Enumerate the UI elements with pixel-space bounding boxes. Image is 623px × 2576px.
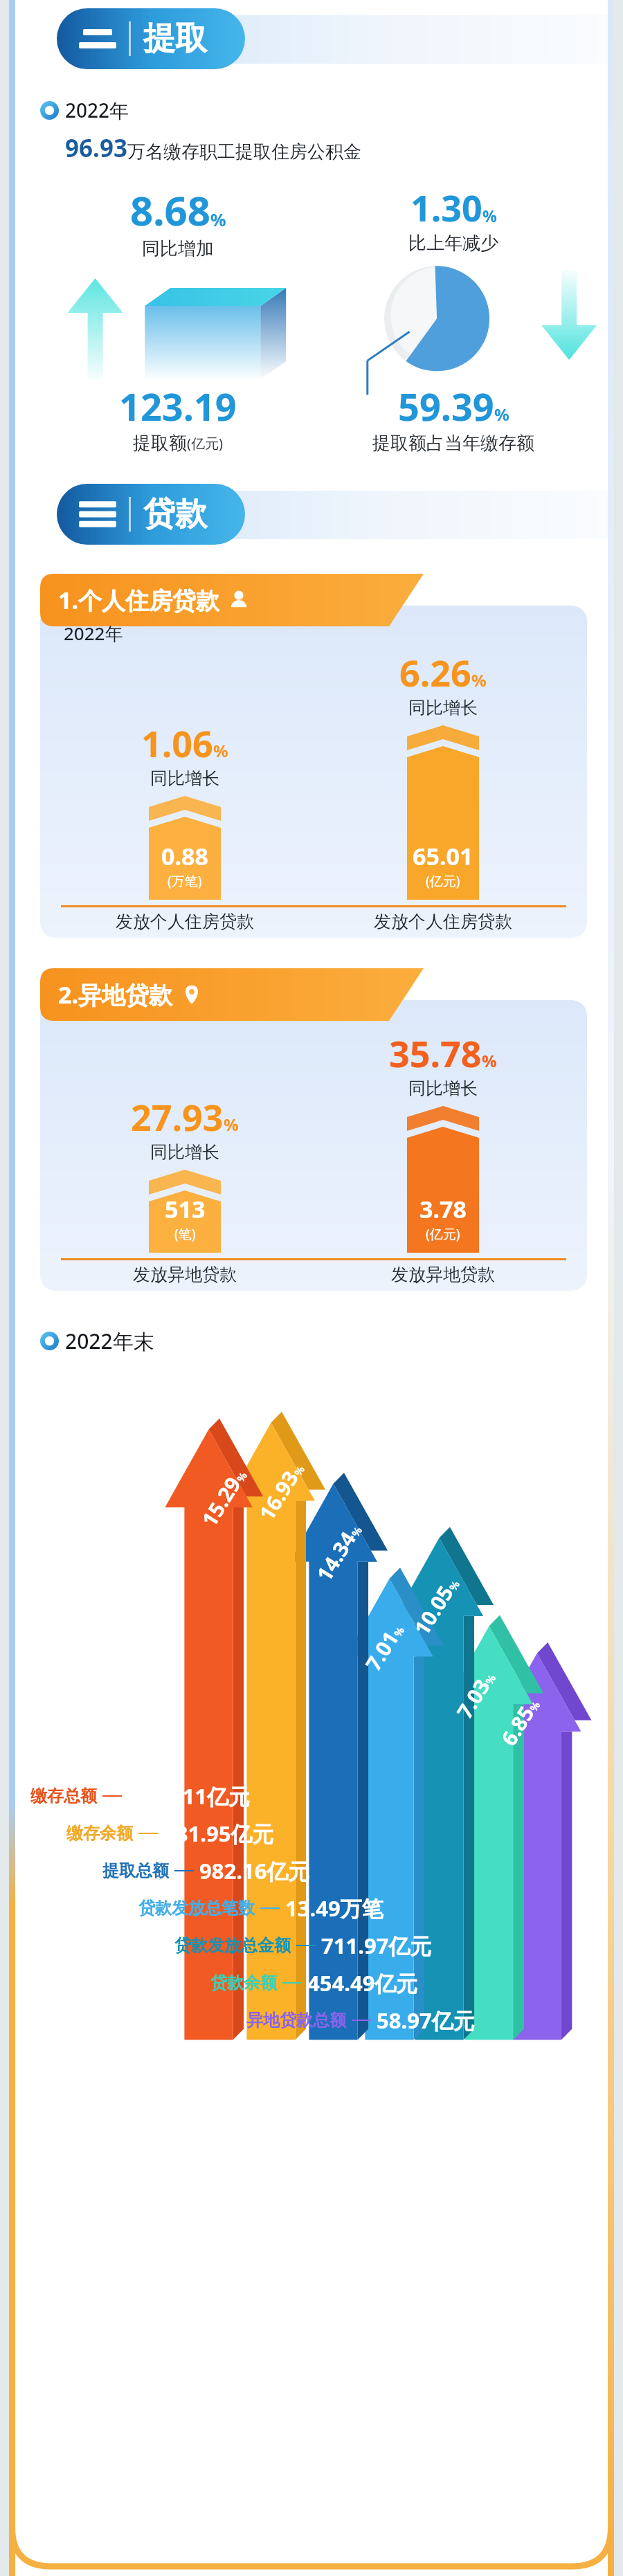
staticText: 6.85 (494, 1701, 540, 1751)
staticText: 58.97亿元 (377, 2006, 475, 2035)
staticText: % (391, 1624, 407, 1639)
staticText: % (494, 403, 509, 426)
other: Person (228, 590, 249, 610)
staticText: 16.93 (252, 1465, 305, 1526)
staticText: 13.49万笔 (285, 1894, 383, 1923)
staticText: 发放个人住房贷款 (374, 911, 512, 932)
staticText: % (348, 1524, 365, 1539)
staticText: 缴存余额 (66, 1823, 133, 1844)
staticText: 8.68 (130, 183, 210, 237)
staticText: % (210, 208, 226, 231)
staticText: 15.29 (195, 1471, 247, 1532)
staticText: 513 (165, 1193, 206, 1225)
staticText: (笔) (174, 1225, 196, 1243)
staticText: (亿元) (426, 1225, 460, 1243)
staticText: % (233, 1469, 250, 1485)
staticText: 1.30 (410, 183, 482, 232)
staticText: % (482, 1049, 497, 1072)
button[interactable]: 2.异地贷款 (40, 968, 587, 1302)
staticText: 异地贷款总额 (246, 2010, 346, 2031)
staticText: 711.97亿元 (321, 1931, 432, 1960)
staticText: (亿元) (187, 434, 223, 453)
staticText: 65.01 (413, 840, 473, 872)
staticText: 454.49亿元 (307, 1968, 418, 1997)
staticText: 59.39 (398, 381, 494, 432)
staticText: 贷款 (143, 494, 207, 534)
staticText: 10.05 (407, 1580, 460, 1641)
staticText: 提取额 (133, 432, 187, 455)
staticText: % (482, 1672, 499, 1687)
staticText: % (291, 1463, 308, 1478)
staticText: 提取 (143, 19, 207, 59)
staticText: 同比增加 (142, 237, 214, 260)
staticText: % (471, 669, 487, 691)
staticText: 2.异地贷款 (58, 979, 173, 1010)
button[interactable]: 1.个人住房贷款 (40, 574, 587, 949)
staticText: 581.95亿元 (163, 1819, 274, 1848)
staticText: 发放个人住房贷款 (116, 911, 254, 932)
staticText: 1564.11亿元 (127, 1781, 251, 1811)
staticText: % (213, 739, 228, 762)
staticText: 982.16亿元 (199, 1856, 310, 1885)
staticText: % (526, 1699, 543, 1714)
staticText: 3.78 (419, 1193, 467, 1225)
staticText: 96.93 (65, 131, 127, 165)
staticText: 2022年末 (65, 1327, 154, 1355)
staticText: 6.26 (399, 648, 471, 697)
staticText: 贷款发放总笔数 (138, 1898, 255, 1919)
staticText: 提取总额 (102, 1860, 169, 1881)
staticText: (万笔) (168, 872, 202, 890)
staticText: 123.19 (119, 381, 237, 432)
staticText: 同比增长 (150, 768, 219, 789)
staticText: 发放异地贷款 (133, 1264, 237, 1285)
staticText: 27.93 (131, 1092, 224, 1141)
staticText: 1.个人住房贷款 (58, 584, 220, 616)
staticText: 14.34 (310, 1526, 362, 1587)
staticText: 缴存总额 (30, 1786, 97, 1806)
button[interactable]: 提取 (57, 8, 245, 69)
staticText: % (482, 205, 497, 226)
staticText: 0.88 (161, 840, 208, 872)
staticText: 35.78 (389, 1028, 482, 1078)
other: Location (181, 984, 202, 1005)
staticText: 1.06 (141, 718, 213, 768)
staticText: 贷款余额 (210, 1972, 277, 1993)
staticText: 提取额占当年缴存额 (372, 432, 534, 455)
staticText: % (446, 1578, 463, 1593)
staticText: 2022年 (65, 97, 129, 123)
staticText: 同比增长 (408, 697, 478, 718)
staticText: 2022年 (64, 621, 123, 646)
staticText: 7.03 (450, 1674, 496, 1724)
staticText: 万名缴存职工提取住房公积金 (127, 140, 361, 163)
button[interactable]: 贷款 (57, 484, 245, 545)
staticText: 同比增长 (150, 1141, 219, 1163)
staticText: 比上年减少 (408, 232, 498, 255)
staticText: 发放异地贷款 (391, 1264, 495, 1285)
staticText: (亿元) (426, 872, 460, 890)
staticText: 7.01 (359, 1626, 405, 1676)
staticText: 贷款发放总金额 (174, 1935, 291, 1956)
staticText: 同比增长 (408, 1078, 478, 1099)
staticText: % (224, 1113, 239, 1136)
